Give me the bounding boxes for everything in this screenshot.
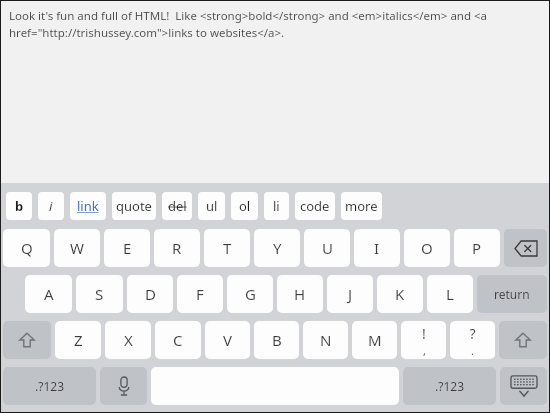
button[interactable]: I <box>354 229 400 267</box>
staticText: b <box>15 197 24 215</box>
staticText: ul <box>206 197 218 215</box>
button[interactable]: link <box>70 192 106 220</box>
staticText: J <box>348 284 353 304</box>
button[interactable]: W <box>54 229 100 267</box>
staticText: O <box>421 238 433 258</box>
staticText: i <box>49 197 53 215</box>
staticText: B <box>272 330 282 350</box>
button[interactable]: Shift <box>499 321 547 359</box>
button[interactable]: E <box>104 229 150 267</box>
button[interactable]: P <box>454 229 500 267</box>
button[interactable]: B <box>254 321 299 359</box>
button[interactable]: quote <box>112 192 156 220</box>
staticText: N <box>320 330 332 350</box>
staticText: L <box>446 284 454 304</box>
staticText: quote <box>116 197 152 215</box>
staticText: more <box>345 197 378 215</box>
button[interactable]: Y <box>254 229 300 267</box>
button[interactable]: ! <box>401 321 446 359</box>
button[interactable]: ul <box>198 192 225 220</box>
button[interactable]: Z <box>55 321 101 359</box>
button[interactable]: return <box>477 275 547 313</box>
staticText: , <box>423 343 426 356</box>
button[interactable]: L <box>427 275 473 313</box>
staticText: F <box>196 284 204 304</box>
staticText: K <box>395 284 405 304</box>
button[interactable]: N <box>303 321 348 359</box>
button[interactable]: T <box>204 229 250 267</box>
button[interactable]: C <box>155 321 201 359</box>
staticText: Q <box>21 238 33 258</box>
button[interactable]: li <box>264 192 289 220</box>
button[interactable]: G <box>227 275 273 313</box>
button[interactable]: K <box>377 275 423 313</box>
staticText: E <box>123 238 132 258</box>
staticText: link <box>77 197 99 215</box>
button[interactable]: H <box>277 275 323 313</box>
staticText: .?123 <box>435 378 465 394</box>
button[interactable]: ol <box>231 192 258 220</box>
staticText: M <box>368 330 382 350</box>
staticText: Z <box>74 330 83 350</box>
staticText: del <box>168 197 187 215</box>
button[interactable]: M <box>352 321 397 359</box>
staticText: P <box>472 238 482 258</box>
staticText: R <box>172 238 182 258</box>
button[interactable]: i <box>38 192 64 220</box>
button[interactable]: X <box>105 321 151 359</box>
button[interactable]: Backspace <box>504 229 547 267</box>
staticText: C <box>173 330 183 350</box>
staticText: I <box>374 238 380 258</box>
button[interactable]: F <box>177 275 223 313</box>
button[interactable]: U <box>304 229 350 267</box>
staticText: code <box>300 197 330 215</box>
staticText: W <box>70 238 84 258</box>
button[interactable]: A <box>25 275 72 313</box>
button[interactable]: S <box>76 275 123 313</box>
button[interactable]: Q <box>3 229 50 267</box>
button[interactable]: O <box>404 229 450 267</box>
staticText: H <box>294 284 306 304</box>
staticText: . <box>471 343 474 356</box>
button[interactable]: .?123 <box>403 367 496 405</box>
button[interactable]: more <box>341 192 382 220</box>
button[interactable]: ? <box>450 321 495 359</box>
staticText: Look it's fun and full of HTML! Like <st… <box>9 8 539 40</box>
staticText: Y <box>273 238 282 258</box>
button[interactable]: R <box>154 229 200 267</box>
button[interactable]: del <box>162 192 192 220</box>
button[interactable]: Hide keyboard <box>500 367 547 405</box>
button[interactable]: Shift <box>3 321 51 359</box>
button[interactable]: .?123 <box>3 367 96 405</box>
staticText: V <box>223 330 233 350</box>
staticText: T <box>223 238 232 258</box>
staticText: ! <box>422 324 426 343</box>
staticText: .?123 <box>35 378 65 394</box>
staticText: S <box>95 284 104 304</box>
staticText: ? <box>469 324 476 343</box>
staticText: return <box>494 286 530 302</box>
staticText: ol <box>239 197 251 215</box>
staticText: X <box>124 330 133 350</box>
button[interactable]: code <box>295 192 335 220</box>
button[interactable]: J <box>327 275 373 313</box>
button[interactable]: b <box>6 192 32 220</box>
staticText: G <box>245 284 256 304</box>
staticText: A <box>44 284 54 304</box>
staticText: U <box>322 238 333 258</box>
button[interactable]: D <box>127 275 173 313</box>
staticText: li <box>273 197 280 215</box>
button[interactable]: Dictate <box>100 367 147 405</box>
button[interactable]: V <box>205 321 250 359</box>
staticText: D <box>145 284 156 304</box>
